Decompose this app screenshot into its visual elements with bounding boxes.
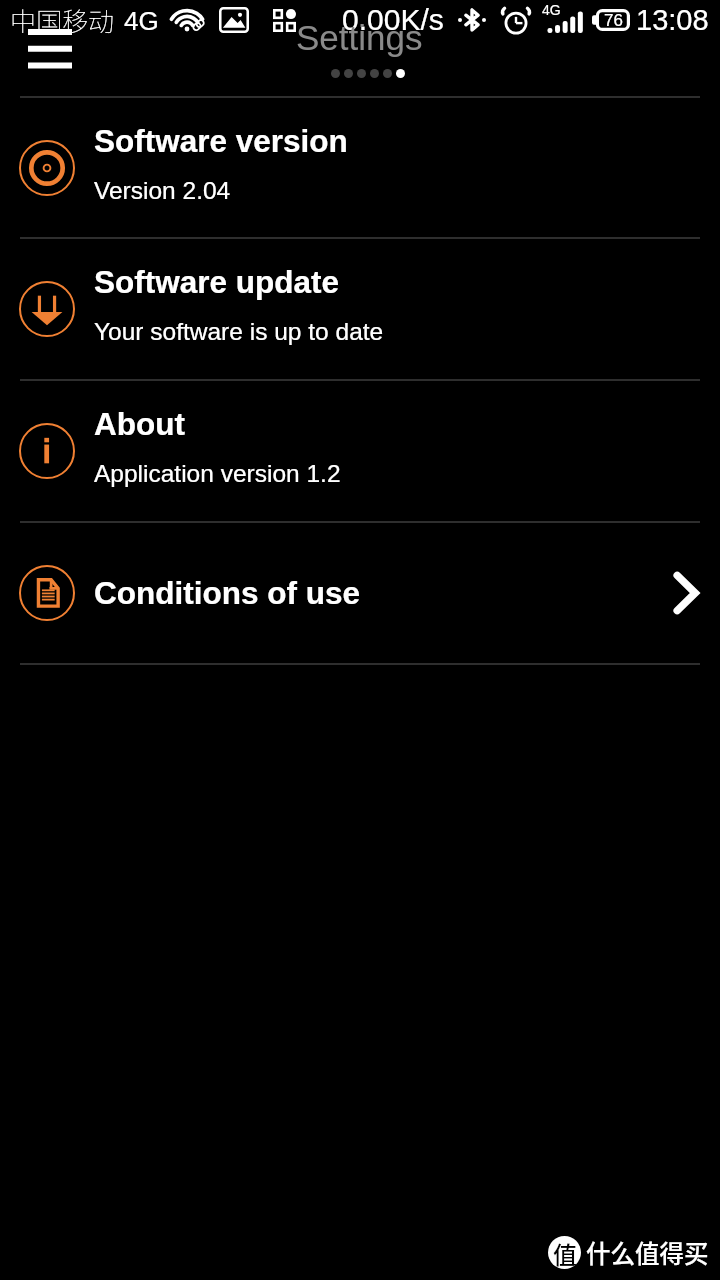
staticText: Software update [94, 264, 340, 299]
staticText: Conditions of use [94, 575, 360, 610]
staticText: 值 [553, 1236, 577, 1269]
staticText: About [94, 406, 185, 441]
staticText: Your software is up to date [94, 318, 384, 345]
staticText: Application version 1.2 [94, 460, 341, 487]
button[interactable]: About [0, 381, 720, 521]
staticText: Software version [94, 123, 348, 158]
button[interactable]: Software update [0, 239, 720, 379]
staticText: 什么值得买 [586, 1235, 709, 1270]
staticText: 中国移动 [10, 1, 115, 39]
staticText: 0.00K/s [342, 3, 444, 37]
staticText: 76 [604, 11, 623, 30]
staticText: Version 2.04 [94, 177, 231, 204]
button[interactable]: Conditions of use [0, 523, 720, 663]
staticText: 13:08 [636, 4, 709, 36]
button[interactable]: Software version [0, 98, 720, 237]
staticText: 4G [542, 2, 561, 18]
staticText: 4G [124, 6, 159, 35]
staticText: Settings [296, 18, 423, 57]
button[interactable]: Menu [17, 25, 83, 75]
